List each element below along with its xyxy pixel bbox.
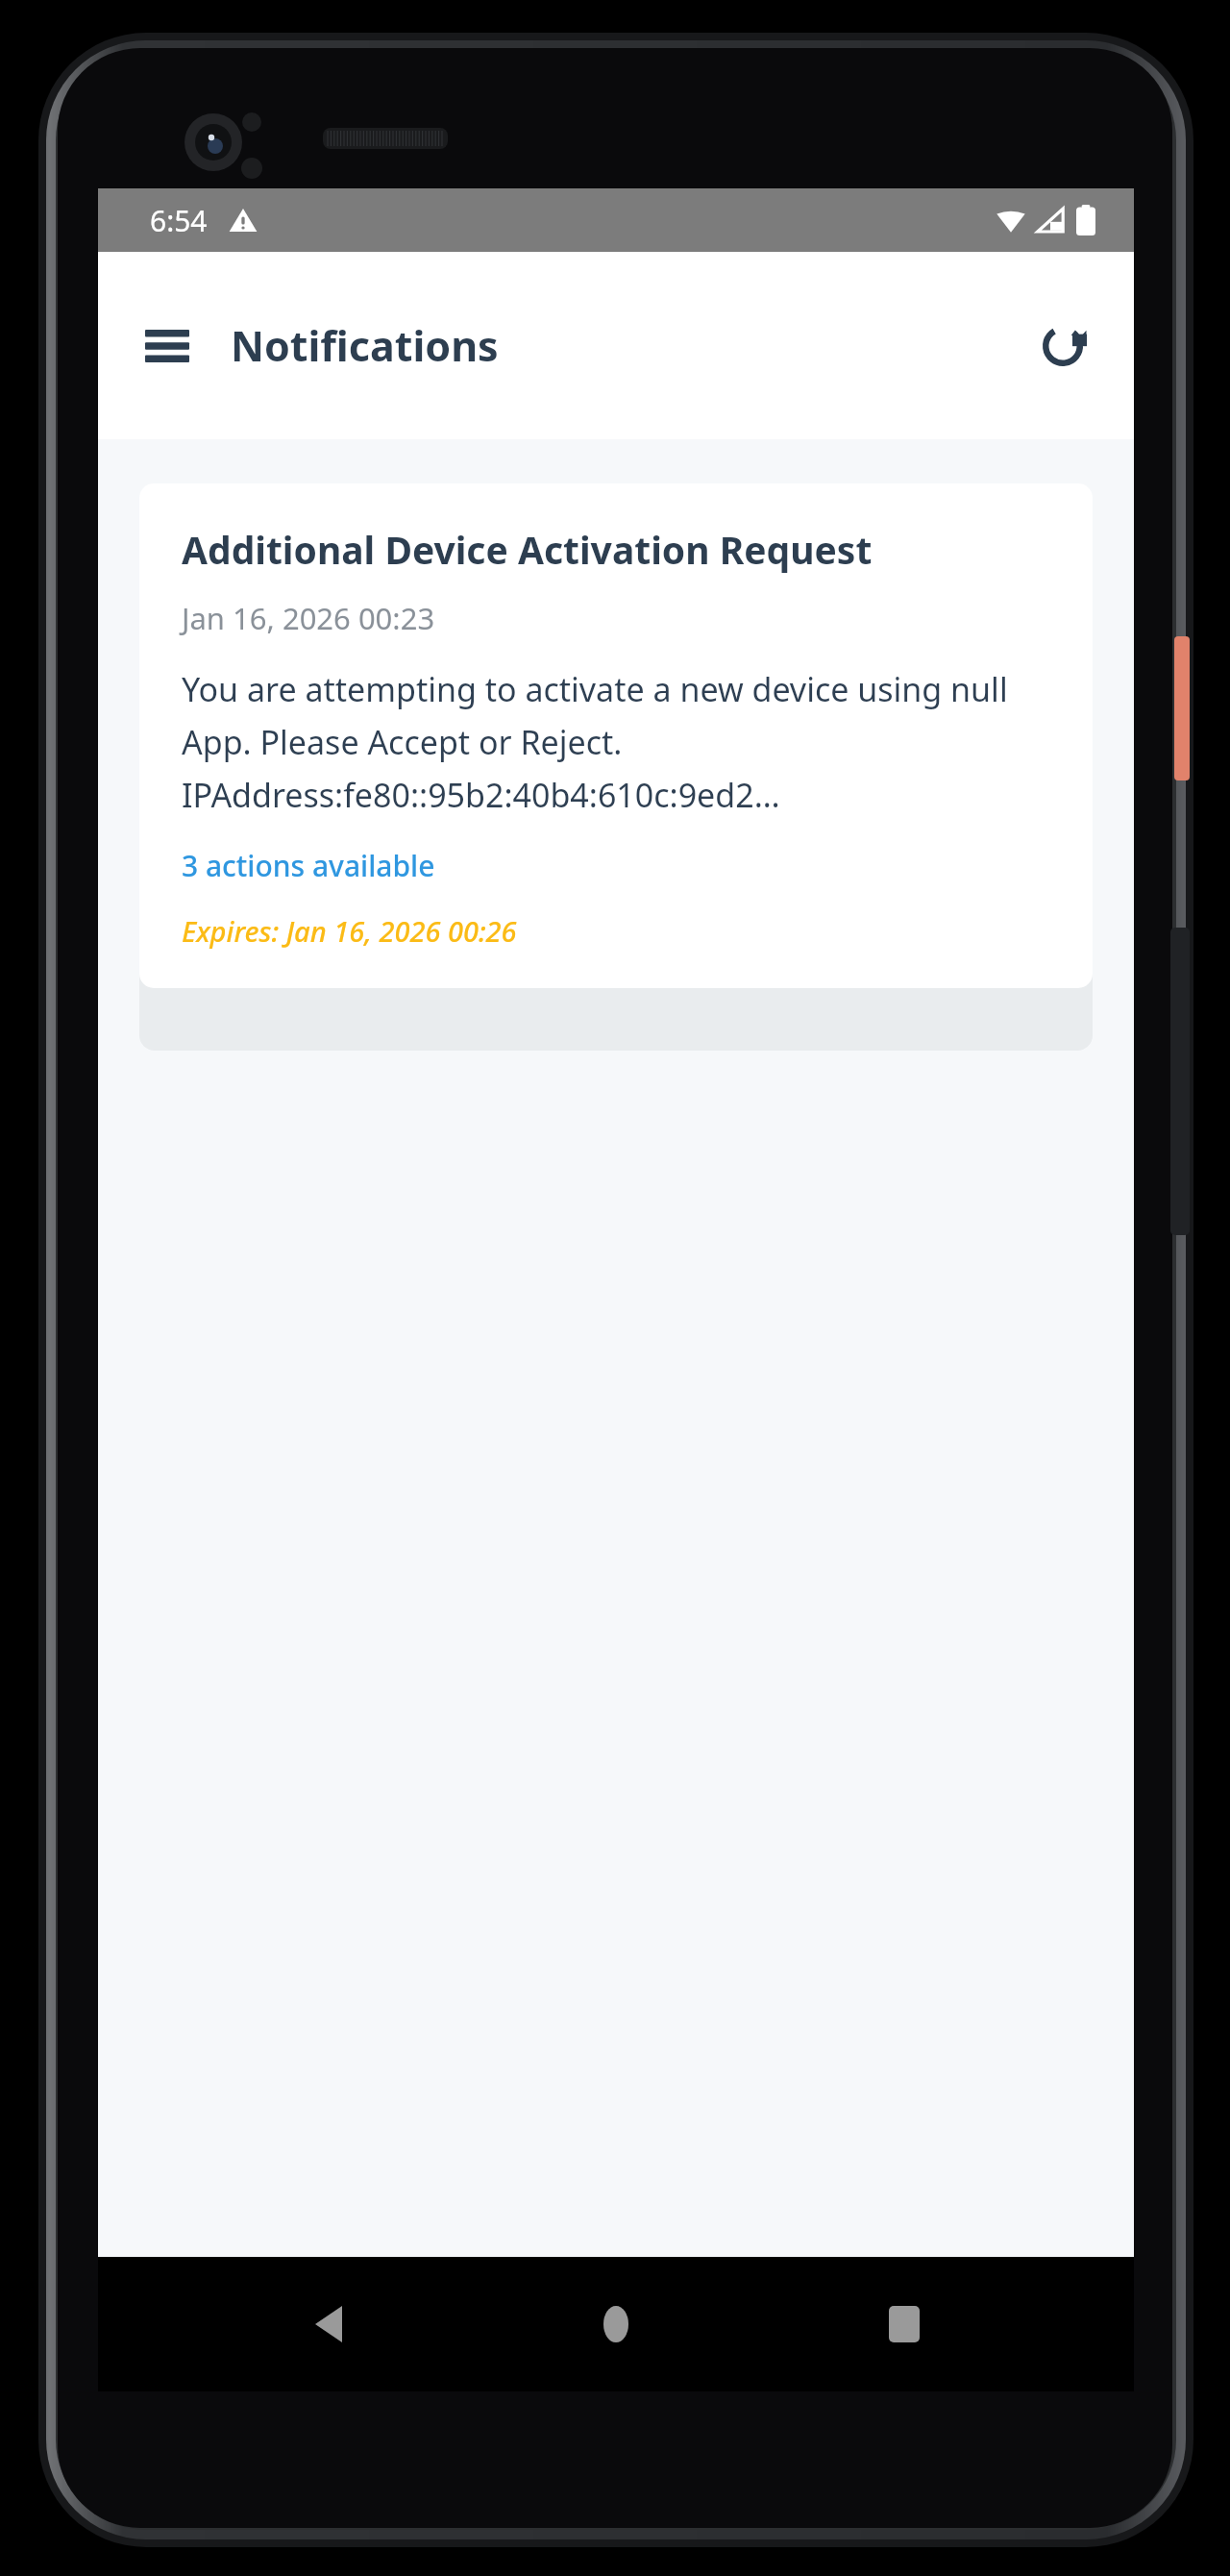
button[interactable]: Back [271, 2266, 386, 2382]
staticText: Additional Device Activation Request [182, 524, 873, 575]
button[interactable]: 3 actions available [182, 846, 435, 885]
button[interactable]: Open navigation menu [121, 300, 213, 392]
staticText: You are attempting to activate a new dev… [182, 667, 1054, 817]
staticText: Expires: Jan 16, 2026 00:26 [182, 912, 517, 950]
staticText: Notifications [231, 317, 499, 374]
button[interactable]: Home [558, 2266, 674, 2382]
staticText: 6:54 [150, 201, 208, 240]
staticText: Jan 16, 2026 00:23 [182, 598, 435, 638]
button[interactable]: Additional Device Activation Request [139, 483, 1093, 988]
staticText: 3 actions available [182, 846, 435, 885]
button[interactable]: Refresh [1017, 300, 1109, 392]
button[interactable]: Recent apps [847, 2266, 962, 2382]
